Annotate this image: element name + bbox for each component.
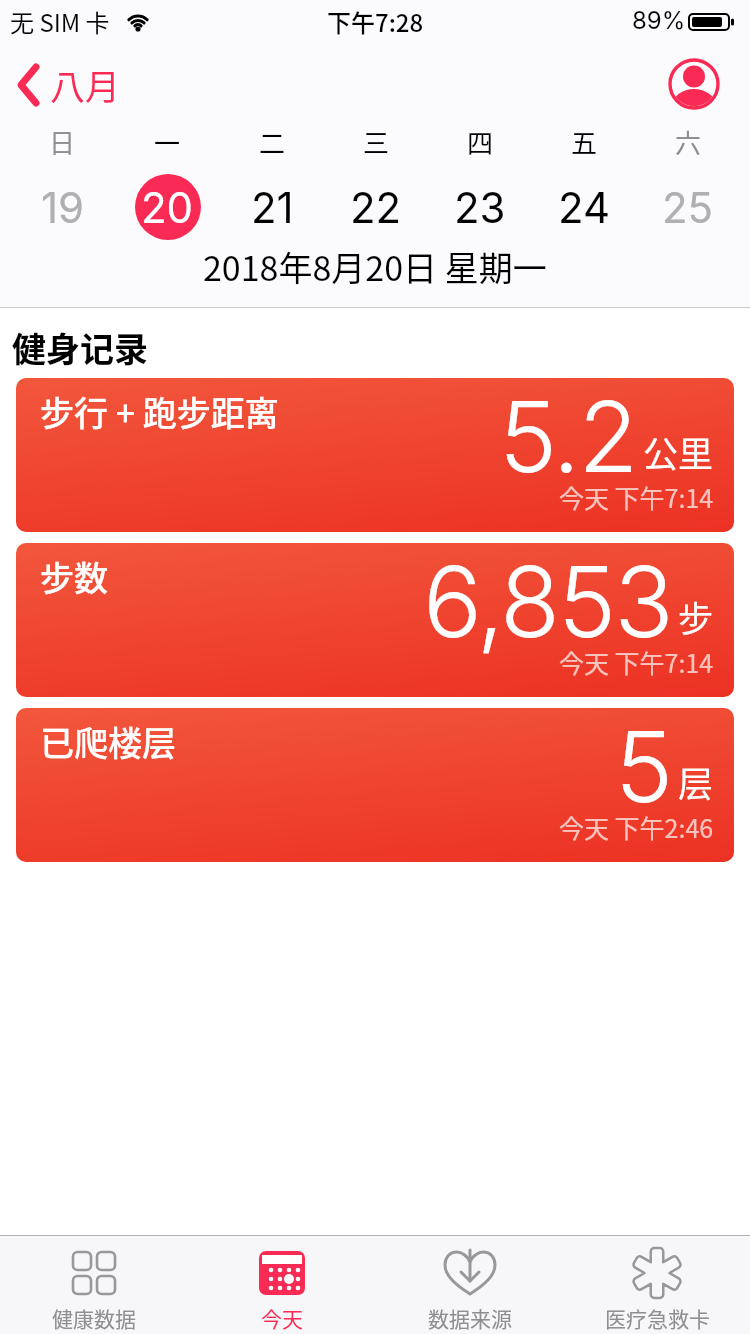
button[interactable]: 步行 + 跑步距离 — [16, 378, 734, 532]
staticText: 22 — [350, 182, 402, 233]
staticText: 2018年8月20日 星期一 — [203, 242, 547, 290]
button[interactable] — [668, 58, 720, 110]
button[interactable]: 步数 — [16, 543, 734, 697]
button[interactable]: 24 — [532, 172, 636, 242]
staticText: 健康数据 — [52, 1303, 136, 1333]
button[interactable]: 19 — [10, 172, 115, 242]
staticText: 步行 + 跑步距离 — [40, 387, 279, 436]
staticText: 健身记录 — [12, 323, 148, 369]
staticText: 20 — [141, 182, 194, 233]
staticText: 24 — [558, 182, 611, 233]
staticText: 89% — [632, 6, 686, 35]
staticText: 已爬楼层 — [40, 717, 176, 766]
button[interactable]: 八月 — [10, 56, 121, 112]
staticText: 下午7:28 — [327, 4, 424, 36]
staticText: 无 SIM 卡 — [10, 4, 110, 36]
staticText: 23 — [454, 182, 506, 233]
staticText: 四 — [467, 123, 494, 155]
staticText: 步 — [678, 591, 714, 642]
button[interactable]: 医疗急救卡 — [564, 1248, 750, 1334]
staticText: 八月 — [50, 59, 121, 110]
staticText: 日 — [49, 123, 76, 155]
staticText: 今天 下午7:14 — [559, 479, 714, 515]
staticText: 今天 下午2:46 — [559, 809, 714, 845]
staticText: 数据来源 — [428, 1303, 512, 1333]
button[interactable]: 22 — [324, 172, 428, 242]
button[interactable]: 25 — [636, 172, 740, 242]
staticText: 一 — [154, 123, 181, 155]
staticText: 层 — [678, 756, 714, 807]
staticText: 6,853 — [423, 543, 672, 661]
staticText: 二 — [259, 123, 286, 155]
button[interactable]: 数据来源 — [376, 1248, 564, 1334]
button[interactable]: 已爬楼层 — [16, 708, 734, 862]
staticText: 19 — [41, 182, 85, 233]
staticText: 三 — [363, 123, 390, 155]
staticText: 五 — [571, 123, 598, 155]
button[interactable]: 今天 — [188, 1248, 376, 1334]
staticText: 步数 — [40, 552, 108, 601]
staticText: 25 — [662, 182, 714, 233]
staticText: 5.2 — [499, 378, 637, 496]
button[interactable]: 20 — [115, 172, 220, 242]
staticText: 医疗急救卡 — [605, 1303, 710, 1333]
button[interactable]: 23 — [428, 172, 532, 242]
staticText: 21 — [251, 182, 294, 233]
staticText: 六 — [675, 123, 702, 155]
staticText: 今天 — [261, 1303, 303, 1333]
button[interactable]: 健康数据 — [0, 1248, 188, 1334]
button[interactable]: 21 — [220, 172, 324, 242]
staticText: 今天 下午7:14 — [559, 644, 714, 680]
staticText: 5 — [615, 708, 672, 826]
staticText: 公里 — [643, 426, 714, 477]
